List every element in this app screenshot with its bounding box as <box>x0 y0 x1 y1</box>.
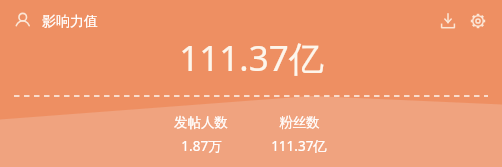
button[interactable]: Settings <box>466 9 490 33</box>
staticText: 111.37亿 <box>271 137 327 155</box>
button[interactable]: 影响力值 <box>14 12 102 31</box>
button[interactable]: Download <box>436 9 460 33</box>
staticText: 111.37亿 <box>179 34 324 82</box>
button[interactable]: 粉丝数 <box>249 114 349 155</box>
staticText: 粉丝数 <box>279 114 320 131</box>
staticText: 影响力值 <box>42 13 98 31</box>
button[interactable]: 发帖人数 <box>153 114 249 155</box>
staticText: 1.87万 <box>181 137 222 155</box>
staticText: 发帖人数 <box>174 114 228 131</box>
